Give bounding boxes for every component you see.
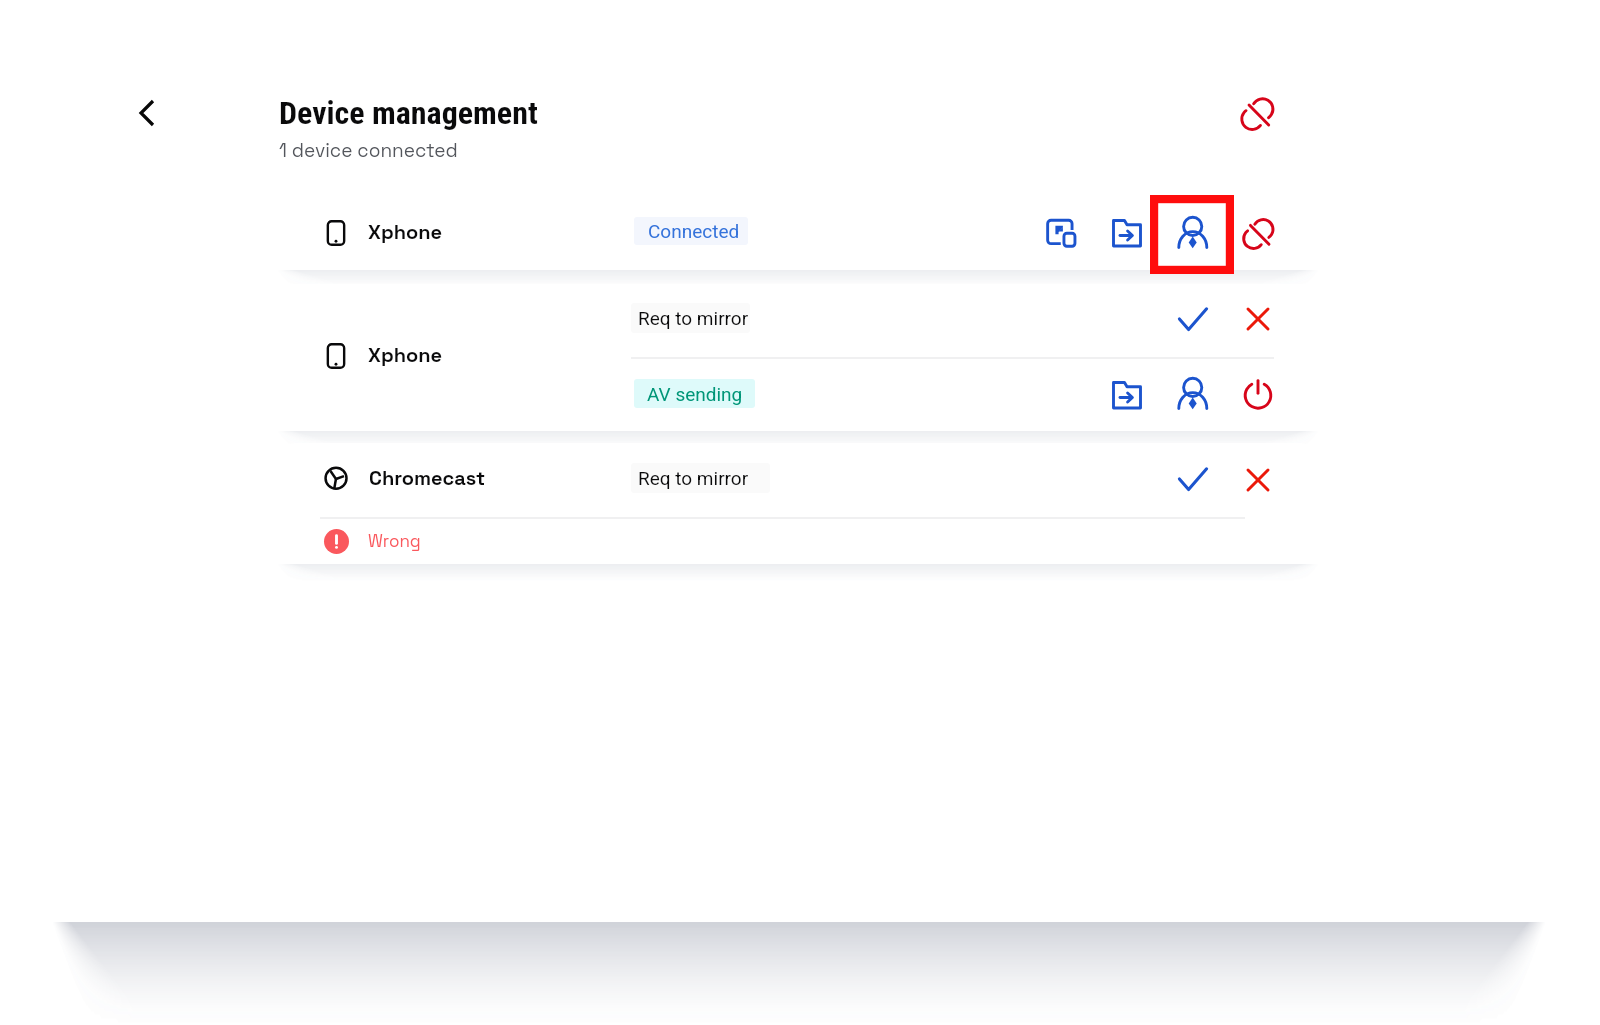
staticText: Req to mirror (638, 467, 749, 489)
button[interactable]: Accept mirroring (1170, 297, 1216, 343)
button[interactable]: Accept mirroring (1170, 457, 1216, 503)
button[interactable]: Reject mirroring (1235, 457, 1281, 503)
button[interactable]: User profile (1170, 371, 1216, 417)
button[interactable]: Back (121, 87, 173, 139)
staticText: Connected (648, 220, 740, 242)
button[interactable]: Disconnect (1235, 210, 1281, 256)
staticText: Xphone (368, 342, 443, 368)
button[interactable]: Transfer files (1104, 372, 1150, 418)
button[interactable]: Req to mirror (631, 463, 770, 493)
button[interactable]: Power off (1235, 372, 1281, 418)
staticText: Device management (279, 94, 538, 132)
staticText: Wrong (368, 530, 421, 552)
button[interactable]: User profile (1170, 210, 1216, 256)
staticText: AV sending (647, 383, 743, 405)
button[interactable]: Disconnect all devices (1231, 87, 1283, 139)
button[interactable]: Connected (634, 217, 748, 245)
button[interactable]: Mirror screen (1038, 210, 1084, 256)
button[interactable]: Transfer files (1104, 210, 1150, 256)
staticText: Xphone (368, 219, 443, 245)
button[interactable]: Reject mirroring (1235, 296, 1281, 342)
staticText: Chromecast (369, 465, 486, 491)
button[interactable]: AV sending (634, 379, 755, 408)
staticText: Req to mirror (638, 307, 749, 329)
staticText: 1 device connected (279, 138, 458, 162)
button[interactable]: Req to mirror (631, 303, 750, 333)
